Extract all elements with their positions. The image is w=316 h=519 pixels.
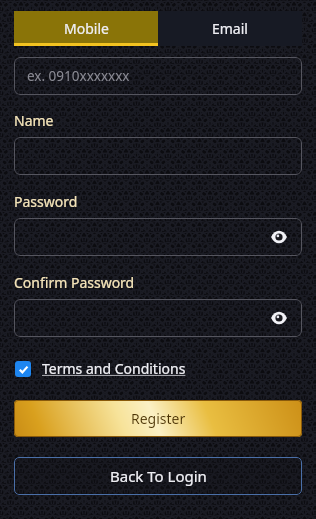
- staticText: Register: [131, 409, 186, 428]
- staticText: Terms and Conditions: [42, 359, 186, 378]
- button[interactable]: Show password: [14, 299, 302, 337]
- staticText: Name: [14, 111, 54, 130]
- staticText: Back To Login: [110, 466, 207, 486]
- button[interactable]: Back To Login: [14, 457, 302, 495]
- button[interactable]: Show password: [268, 226, 290, 248]
- button[interactable]: Mobile: [14, 11, 158, 46]
- button[interactable]: [14, 137, 302, 175]
- button[interactable]: Register: [14, 400, 302, 437]
- button[interactable]: ex. 0910xxxxxxx: [14, 57, 302, 95]
- button[interactable]: Terms and Conditions: [15, 359, 186, 378]
- staticText: ex. 0910xxxxxxx: [27, 67, 130, 85]
- staticText: Mobile: [64, 19, 109, 38]
- button[interactable]: Show password: [268, 307, 290, 329]
- button[interactable]: Email: [158, 11, 302, 46]
- staticText: Password: [14, 192, 78, 211]
- button[interactable]: Show password: [14, 218, 302, 256]
- staticText: Confirm Password: [14, 273, 135, 292]
- staticText: Email: [212, 19, 248, 38]
